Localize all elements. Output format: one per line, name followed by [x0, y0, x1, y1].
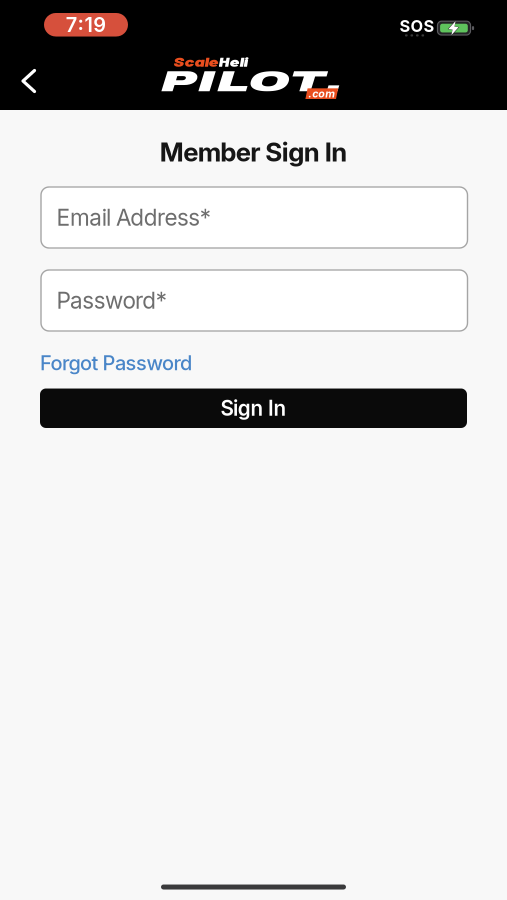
staticText: Scale — [173, 53, 218, 75]
staticText: 7:19 — [66, 13, 106, 37]
staticText: .com — [308, 87, 335, 100]
staticText: PILOT. — [160, 66, 343, 121]
staticText: Heli — [218, 53, 247, 75]
staticText: SOS — [399, 16, 434, 36]
staticText: Email Address* — [56, 204, 211, 231]
staticText: Forgot Password — [40, 351, 192, 375]
staticText: Sign In — [220, 396, 287, 421]
staticText: Member Sign In — [160, 136, 347, 168]
staticText: Password* — [56, 287, 167, 314]
